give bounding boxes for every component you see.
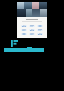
button[interactable]: [37, 29, 43, 31]
button[interactable]: [21, 25, 27, 27]
button[interactable]: Logo: [11, 40, 18, 47]
button[interactable]: [29, 29, 35, 31]
button[interactable]: [21, 29, 27, 31]
button[interactable]: [29, 25, 35, 27]
button[interactable]: [29, 33, 35, 35]
button[interactable]: [37, 25, 43, 27]
button[interactable]: [21, 33, 27, 35]
button[interactable]: [17, 2, 47, 38]
button[interactable]: [37, 33, 43, 35]
